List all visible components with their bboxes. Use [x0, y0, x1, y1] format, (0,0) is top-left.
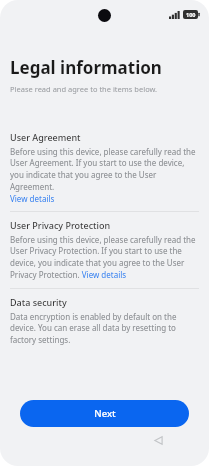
staticText: Please read and agree to the items below… [10, 84, 158, 94]
staticText: Data security [10, 296, 67, 308]
button[interactable]: Before using this device, please careful… [10, 234, 199, 281]
staticText: Data encryption is enabled by default on… [10, 311, 199, 346]
staticText: User Agreement [10, 131, 81, 143]
staticText: Before using this device, please careful… [10, 146, 199, 193]
staticText: Legal information [10, 56, 162, 79]
staticText: User Privacy Protection [10, 219, 111, 231]
button[interactable]: Next [20, 400, 189, 427]
button[interactable]: View details [10, 193, 55, 204]
button[interactable]: Back [150, 432, 166, 448]
staticText: Next [94, 407, 116, 420]
staticText: 100 [186, 11, 196, 18]
